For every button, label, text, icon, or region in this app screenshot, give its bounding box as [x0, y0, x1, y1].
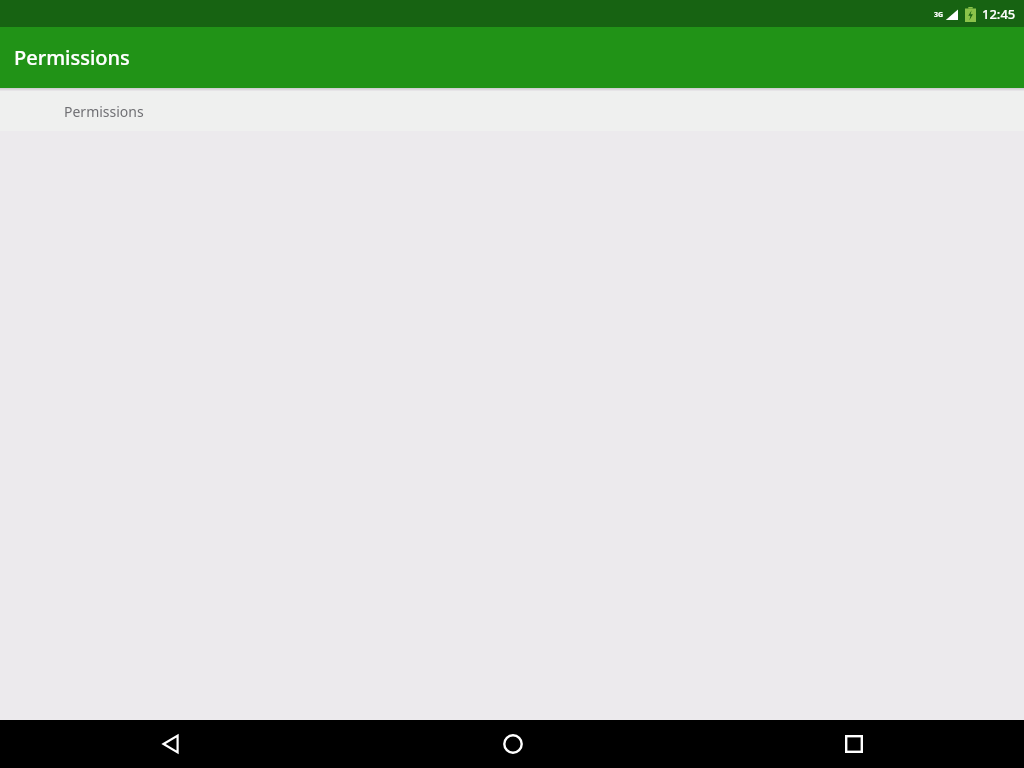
- staticText: 12:45: [982, 5, 1016, 23]
- staticText: Permissions: [64, 102, 144, 121]
- button[interactable]: Home: [342, 720, 683, 768]
- button[interactable]: Back: [0, 720, 342, 768]
- button[interactable]: Recent apps: [683, 720, 1024, 768]
- staticText: 3G: [934, 10, 944, 20]
- staticText: Permissions: [14, 44, 130, 71]
- button[interactable]: Permissions: [0, 91, 1024, 131]
